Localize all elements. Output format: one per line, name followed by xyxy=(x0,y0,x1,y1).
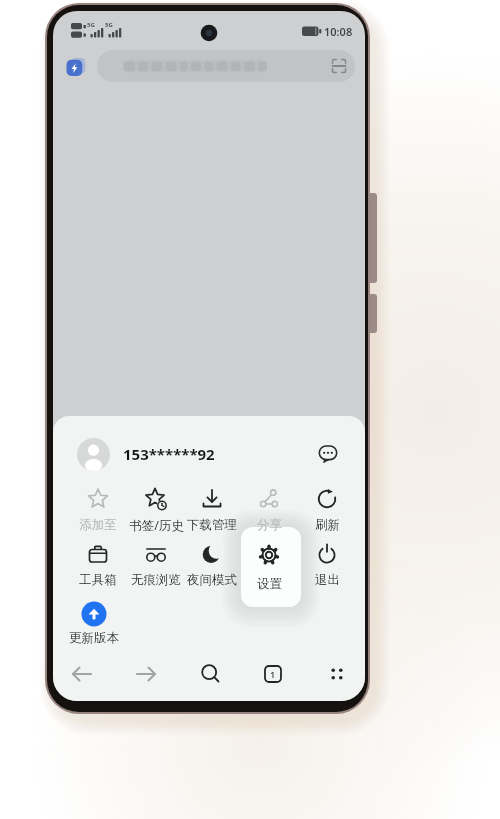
staticText: 10:08 xyxy=(324,24,353,39)
button[interactable]: 工具箱 xyxy=(67,539,129,589)
button[interactable] xyxy=(126,654,166,694)
staticText: 无痕浏览 xyxy=(131,572,181,588)
button[interactable]: 下载管理 xyxy=(181,484,243,534)
button[interactable]: 分享 xyxy=(238,484,300,534)
button[interactable]: 退出 xyxy=(296,539,358,589)
staticText: 夜间模式 xyxy=(187,572,237,588)
staticText: 153******92 xyxy=(123,444,215,464)
staticText: 下载管理 xyxy=(187,517,237,533)
staticText: 刷新 xyxy=(315,517,340,533)
button[interactable] xyxy=(62,654,102,694)
button[interactable] xyxy=(70,599,126,651)
button[interactable] xyxy=(311,437,345,471)
button[interactable] xyxy=(66,58,87,77)
button[interactable]: 刷新 xyxy=(296,484,358,534)
button[interactable] xyxy=(241,527,301,607)
staticText: 设置 xyxy=(257,576,282,592)
staticText: 5G xyxy=(87,21,95,29)
staticText: 书签/历史 xyxy=(129,517,184,533)
staticText: 更新版本 xyxy=(69,630,119,646)
button[interactable]: 无痕浏览 xyxy=(125,539,187,589)
staticText: 退出 xyxy=(315,572,340,588)
staticText: 5G xyxy=(105,21,113,29)
button[interactable]: 书签/历史 xyxy=(125,484,187,534)
button[interactable] xyxy=(191,654,231,694)
button[interactable]: 设置 xyxy=(238,540,300,590)
button[interactable]: 添加至 xyxy=(67,484,129,534)
staticText: 1 xyxy=(270,668,276,680)
button[interactable]: 夜间模式 xyxy=(181,539,243,589)
staticText: 添加至 xyxy=(79,517,117,533)
button[interactable] xyxy=(75,436,245,474)
button[interactable] xyxy=(97,50,355,82)
staticText: 工具箱 xyxy=(79,572,117,588)
button[interactable] xyxy=(253,654,293,694)
staticText: 分享 xyxy=(257,517,282,533)
button[interactable] xyxy=(317,654,357,694)
